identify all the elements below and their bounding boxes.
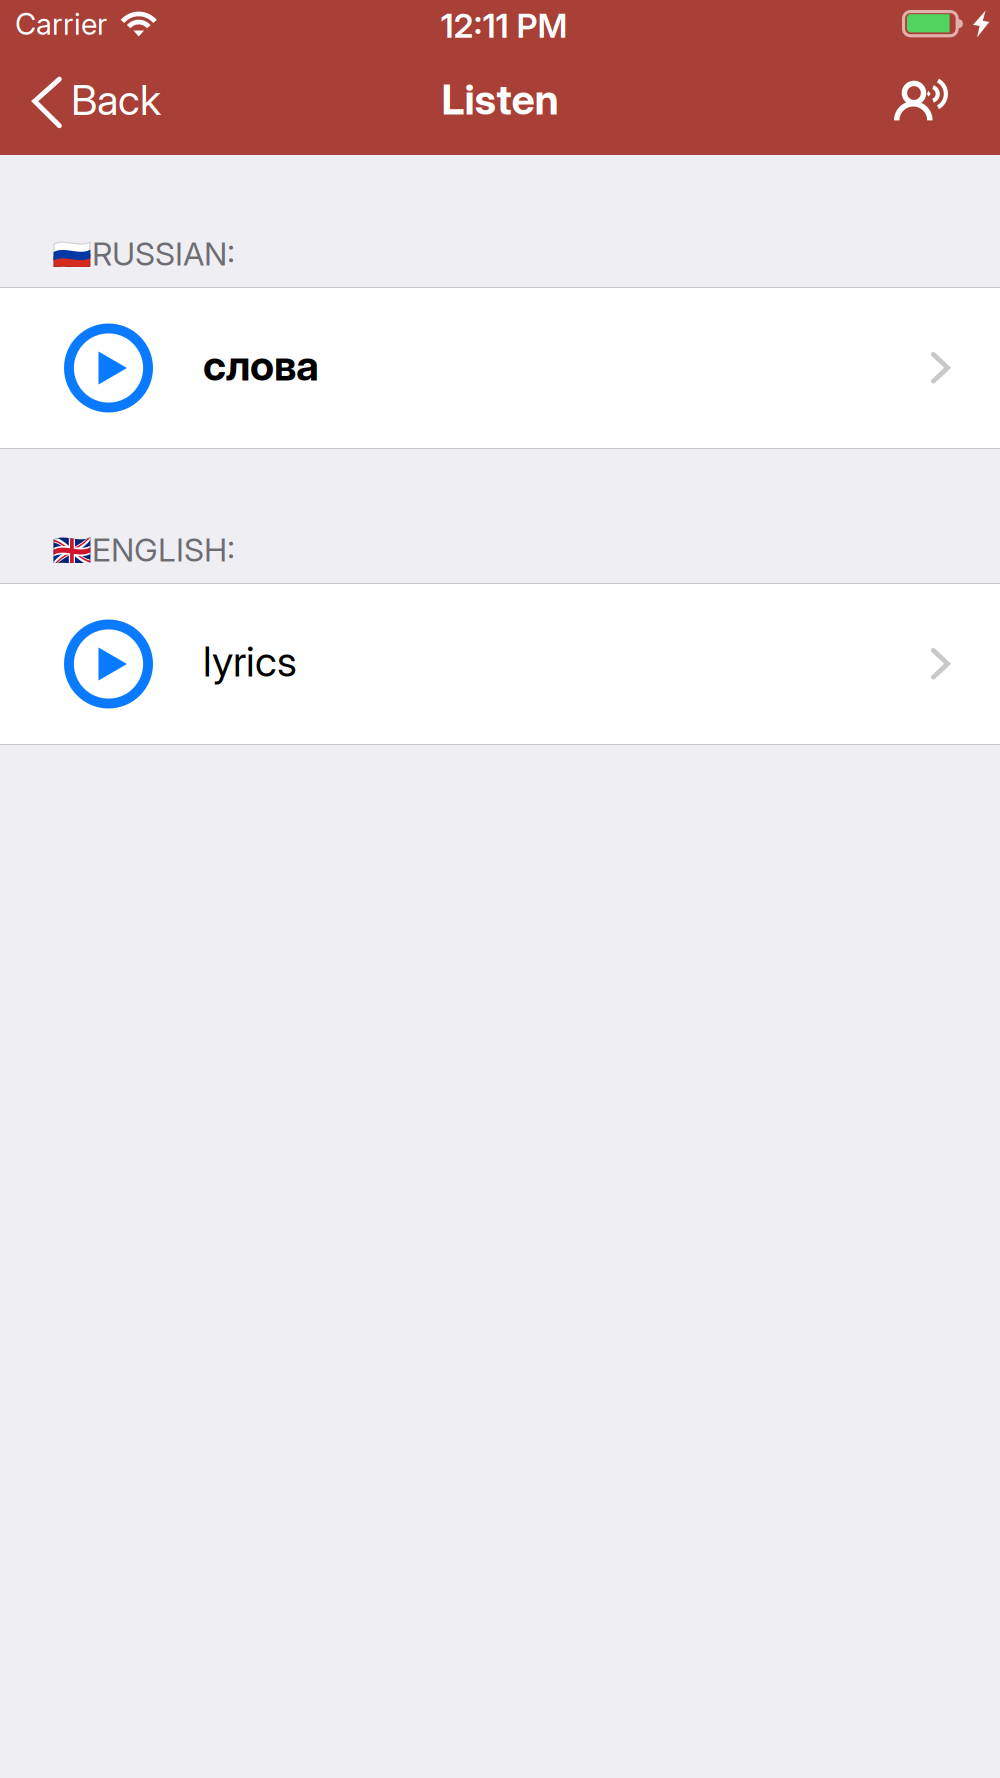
staticText: 🇷🇺RUSSIAN: [52, 235, 235, 273]
staticText: Back [71, 75, 161, 125]
staticText: Listen [441, 74, 558, 124]
button[interactable]: Back [0, 48, 177, 155]
staticText: 12:11 PM [440, 5, 567, 46]
staticText: слова [203, 340, 319, 390]
staticText: 🇬🇧ENGLISH: [52, 531, 235, 569]
staticText: Carrier [15, 6, 107, 42]
button[interactable]: lyrics [0, 584, 1000, 744]
button[interactable]: Speak [894, 48, 1000, 155]
button[interactable]: слова [0, 288, 1000, 448]
staticText: lyrics [203, 636, 297, 686]
